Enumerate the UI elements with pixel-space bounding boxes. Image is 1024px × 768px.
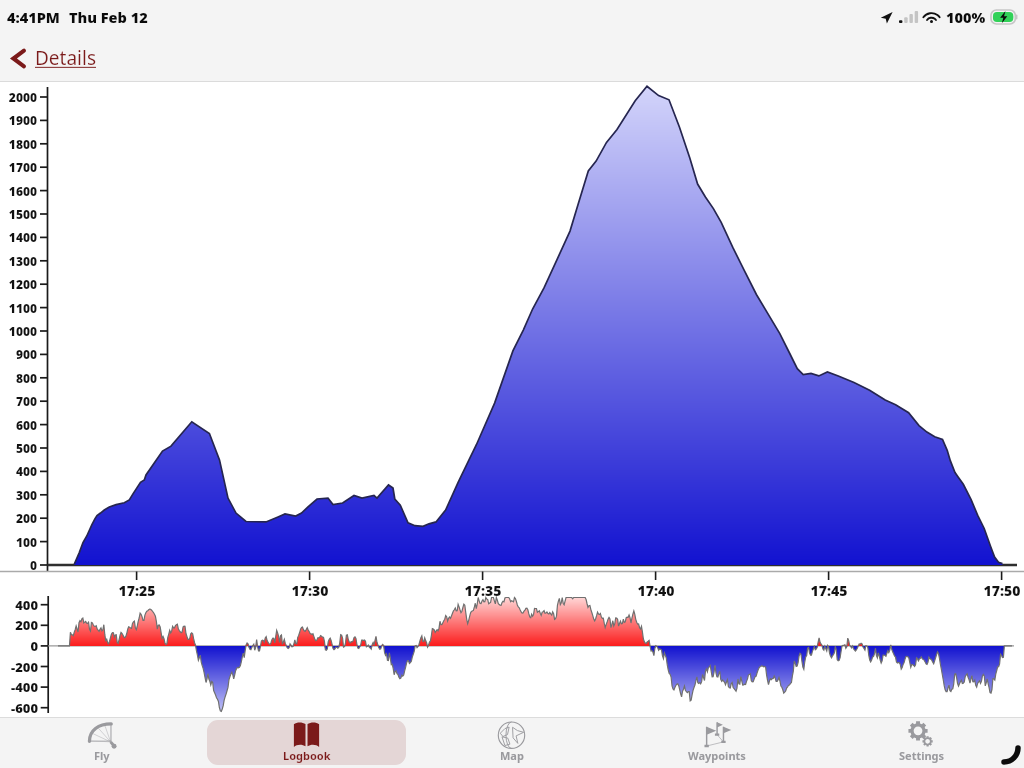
button[interactable]: Settings (822, 720, 1021, 765)
staticText: 400 (2, 596, 38, 614)
button[interactable]: Waypoints (617, 720, 816, 765)
staticText: 2000 (0, 89, 37, 105)
staticText: 1000 (0, 323, 37, 339)
staticText: Waypoints (688, 748, 746, 763)
staticText: Map (500, 748, 524, 763)
staticText: 1100 (0, 300, 37, 316)
staticText: -600 (2, 699, 38, 717)
staticText: Fly (94, 748, 110, 763)
other: Back (10, 47, 27, 70)
staticText: Details (35, 45, 97, 71)
staticText: 100% (946, 7, 986, 27)
staticText: 1300 (0, 253, 37, 269)
staticText: 600 (0, 417, 37, 433)
staticText: 300 (0, 487, 37, 503)
staticText: 700 (0, 393, 37, 409)
staticText: 4:41PM (7, 7, 60, 27)
button[interactable]: Back (6, 41, 101, 75)
staticText: Logbook (283, 748, 331, 763)
staticText: 0 (0, 557, 37, 573)
staticText: 200 (2, 616, 38, 634)
staticText: 500 (0, 440, 37, 456)
staticText: 17:35 (453, 581, 513, 600)
staticText: 1800 (0, 136, 37, 152)
staticText: 400 (0, 463, 37, 479)
staticText: 17:30 (280, 581, 340, 600)
button[interactable]: Fly (3, 720, 201, 765)
staticText: 1700 (0, 159, 37, 175)
staticText: 1400 (0, 229, 37, 245)
staticText: 1500 (0, 206, 37, 222)
staticText: 17:25 (107, 581, 167, 600)
staticText: 1900 (0, 112, 37, 128)
staticText: -400 (2, 678, 38, 696)
staticText: 17:40 (626, 581, 686, 600)
staticText: 17:45 (799, 581, 859, 600)
staticText: 100 (0, 534, 37, 550)
staticText: 17:50 (972, 581, 1024, 600)
staticText: Settings (899, 748, 945, 763)
staticText: Thu Feb 12 (69, 7, 148, 27)
staticText: 200 (0, 510, 37, 526)
staticText: 1200 (0, 276, 37, 292)
staticText: 900 (0, 346, 37, 362)
button[interactable]: Logbook (207, 720, 406, 765)
staticText: -200 (2, 658, 38, 676)
staticText: 0 (2, 637, 38, 655)
button[interactable]: Map (412, 720, 611, 765)
staticText: 1600 (0, 183, 37, 199)
staticText: 800 (0, 370, 37, 386)
